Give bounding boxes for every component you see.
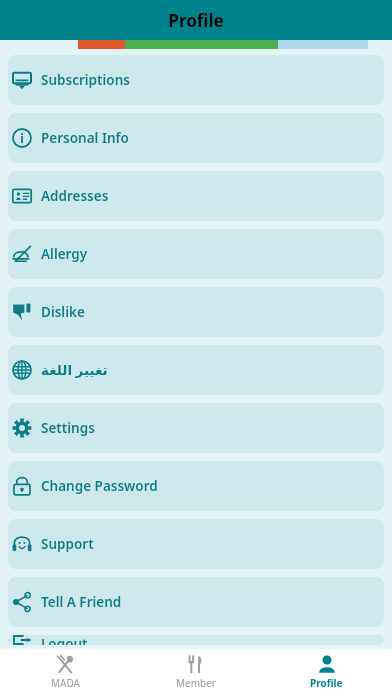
staticText: Addresses [41,187,109,205]
button[interactable]: تغيير اللغة [8,345,384,395]
staticText: Logout [41,635,88,645]
staticText: MADA [51,676,80,690]
staticText: Settings [41,419,95,437]
button[interactable]: Personal Info [8,113,384,163]
button[interactable]: Tell A Friend [8,577,384,627]
staticText: Dislike [41,303,85,321]
button[interactable]: Change Password [8,461,384,511]
staticText: Allergy [41,245,88,263]
staticText: Support [41,535,94,553]
button[interactable]: Profile [261,649,392,696]
staticText: Member [176,676,216,690]
button[interactable]: Addresses [8,171,384,221]
button[interactable]: Member [130,649,261,696]
staticText: Profile [168,9,224,32]
staticText: Change Password [41,477,158,495]
button[interactable]: Subscriptions [8,55,384,105]
button[interactable]: Settings [8,403,384,453]
button[interactable]: Logout [8,635,384,645]
staticText: Tell A Friend [41,593,122,611]
button[interactable]: Dislike [8,287,384,337]
button[interactable]: Allergy [8,229,384,279]
staticText: تغيير اللغة [41,361,108,379]
staticText: Profile [310,676,343,690]
staticText: Personal Info [41,129,129,147]
staticText: Subscriptions [41,71,130,89]
button[interactable]: Support [8,519,384,569]
button[interactable]: MADA [0,649,130,696]
